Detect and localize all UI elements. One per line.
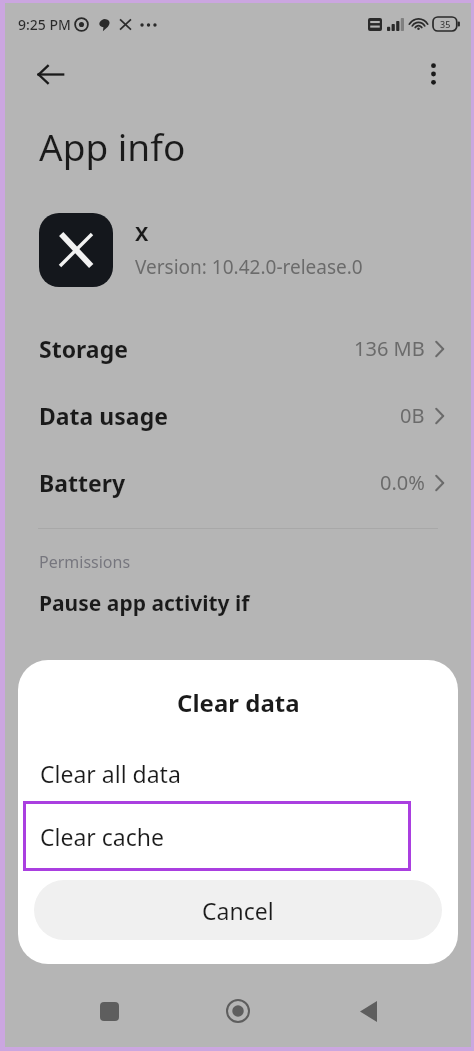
button[interactable]: Clear all data bbox=[18, 751, 458, 795]
button[interactable]: Back bbox=[27, 51, 73, 97]
staticText: App info bbox=[39, 121, 186, 171]
staticText: Version: 10.42.0-release.0 bbox=[135, 254, 363, 280]
staticText: Cancel bbox=[202, 895, 274, 926]
staticText: X bbox=[135, 220, 149, 247]
staticText: Clear all data bbox=[40, 758, 181, 789]
button[interactable]: Storage bbox=[5, 315, 471, 382]
staticText: Data usage bbox=[39, 400, 168, 431]
button[interactable]: More options bbox=[411, 52, 455, 96]
button[interactable]: Back bbox=[342, 985, 394, 1037]
staticText: Storage bbox=[39, 333, 128, 364]
button[interactable]: Cancel bbox=[34, 880, 442, 940]
staticText: Pause app activity if bbox=[39, 589, 250, 618]
staticText: 9:25 PM bbox=[18, 15, 71, 34]
staticText: 0B bbox=[400, 402, 425, 429]
staticText: Permissions bbox=[39, 551, 131, 573]
staticText: 35 bbox=[440, 18, 451, 30]
button[interactable]: X bbox=[39, 213, 471, 287]
staticText: Clear cache bbox=[40, 821, 164, 852]
button[interactable]: Home bbox=[212, 985, 264, 1037]
staticText: 0.0% bbox=[380, 469, 425, 496]
button[interactable]: Clear cache bbox=[23, 801, 411, 871]
button[interactable]: Recent apps bbox=[83, 985, 135, 1037]
staticText: Battery bbox=[39, 467, 126, 498]
staticText: 136 MB bbox=[354, 335, 425, 362]
staticText: Clear data bbox=[177, 686, 300, 719]
button[interactable]: Data usage bbox=[5, 382, 471, 449]
button[interactable]: Battery bbox=[5, 449, 471, 516]
